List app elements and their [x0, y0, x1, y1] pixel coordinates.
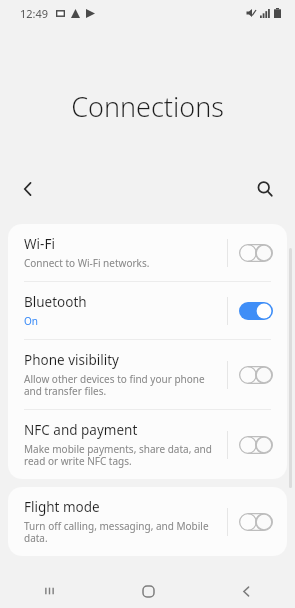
button[interactable]: Wi-Fi — [8, 224, 287, 281]
staticText: Connections — [0, 88, 295, 125]
button[interactable]: Recents — [0, 574, 99, 608]
staticText: Turn off calling, messaging, and Mobile … — [24, 519, 217, 545]
staticText: NFC and payment — [24, 421, 138, 439]
button[interactable]: Flight mode — [8, 487, 287, 556]
button[interactable]: Flight mode toggle — [239, 513, 273, 531]
staticText: Connect to Wi-Fi networks. — [24, 256, 150, 270]
button[interactable]: Search — [247, 171, 283, 207]
button[interactable]: Bluetooth toggle — [239, 302, 273, 320]
staticText: On — [24, 314, 38, 328]
button[interactable]: Back — [10, 171, 46, 207]
button[interactable]: Back — [197, 574, 295, 608]
button[interactable]: NFC and payment toggle — [239, 436, 273, 454]
button[interactable]: Phone visibility — [8, 340, 287, 409]
button[interactable]: NFC and payment — [8, 410, 287, 479]
button[interactable]: Wi-Fi toggle — [239, 244, 273, 262]
staticText: 12:49 — [20, 6, 49, 21]
staticText: Bluetooth — [24, 293, 87, 311]
staticText: Make mobile payments, share data, and re… — [24, 442, 217, 468]
staticText: Flight mode — [24, 498, 100, 516]
button[interactable]: Phone visibility toggle — [239, 366, 273, 384]
staticText: Wi-Fi — [24, 235, 55, 253]
button[interactable]: Bluetooth — [8, 282, 287, 339]
staticText: Phone visibility — [24, 351, 119, 369]
button[interactable]: Home — [99, 574, 197, 608]
staticText: Allow other devices to find your phone a… — [24, 372, 217, 398]
